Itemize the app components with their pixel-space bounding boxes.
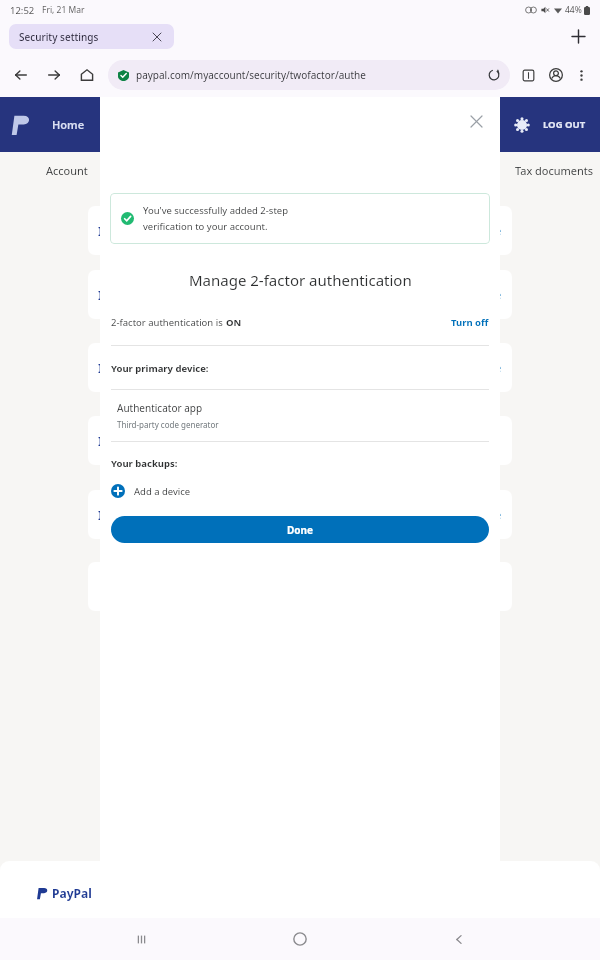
button[interactable]: I xyxy=(88,270,512,319)
button[interactable]: I xyxy=(88,490,512,539)
button[interactable]: Security settings xyxy=(9,24,174,49)
staticText: e xyxy=(495,507,502,522)
staticText: Authenticator app xyxy=(117,401,203,415)
button[interactable]: Home xyxy=(282,921,318,957)
staticText: e xyxy=(495,360,502,375)
button[interactable]: paypal.com/myaccount/security/twofactor/… xyxy=(108,60,510,90)
button[interactable]: Tabs xyxy=(516,63,540,87)
staticText: Your primary device: xyxy=(111,362,209,375)
staticText: I xyxy=(98,286,104,304)
staticText: Your backups: xyxy=(111,457,178,470)
button[interactable]: Add a device xyxy=(111,480,191,502)
button[interactable]: Forward xyxy=(41,62,67,88)
button[interactable]: I xyxy=(88,343,512,392)
button[interactable]: I xyxy=(88,206,512,255)
staticText: 12:52 xyxy=(10,4,35,17)
staticText: Fri, 21 Mar xyxy=(42,4,85,16)
staticText: e xyxy=(495,287,502,302)
staticText: I xyxy=(98,506,104,524)
staticText: Tax documents xyxy=(515,163,594,178)
staticText: 44% xyxy=(565,4,582,16)
button[interactable]: Close xyxy=(463,108,489,134)
button[interactable]: Close tab xyxy=(150,30,164,44)
button[interactable]: Recents xyxy=(123,921,159,957)
button[interactable]: LOG OUT xyxy=(543,118,586,131)
staticText: Turn off xyxy=(451,316,489,329)
staticText: Home xyxy=(52,117,85,132)
staticText: paypal.com/myaccount/security/twofactor/… xyxy=(136,68,482,82)
button[interactable]: New tab xyxy=(565,23,591,49)
staticText: I xyxy=(98,359,104,377)
staticText: Manage 2-factor authentication xyxy=(189,270,412,290)
staticText: I xyxy=(98,432,104,450)
staticText: Third-party code generator xyxy=(117,419,219,430)
button[interactable]: Home xyxy=(74,62,100,88)
button[interactable]: Done xyxy=(111,516,489,543)
staticText: Account xyxy=(46,163,88,178)
staticText: PayPal xyxy=(52,885,92,901)
button[interactable]: More options xyxy=(570,64,592,86)
button[interactable]: Account xyxy=(544,63,568,87)
button[interactable]: Back xyxy=(8,62,34,88)
staticText: You've successfully added 2-step xyxy=(143,204,289,217)
button[interactable]: Reload xyxy=(486,67,502,83)
staticText: e xyxy=(495,223,502,238)
button[interactable]: Turn off xyxy=(451,316,489,329)
staticText: LOG OUT xyxy=(543,118,586,131)
staticText: Add a device xyxy=(134,485,191,498)
staticText: Done xyxy=(287,523,314,537)
staticText: verification to your account. xyxy=(143,220,268,233)
staticText: 2-factor authentication is xyxy=(111,316,226,329)
button[interactable]: I xyxy=(88,416,512,465)
staticText: Security settings xyxy=(19,30,99,44)
staticText: I xyxy=(98,222,104,240)
other: Settings xyxy=(515,118,529,132)
button[interactable]: Back xyxy=(441,921,477,957)
staticText: ON xyxy=(226,316,242,329)
